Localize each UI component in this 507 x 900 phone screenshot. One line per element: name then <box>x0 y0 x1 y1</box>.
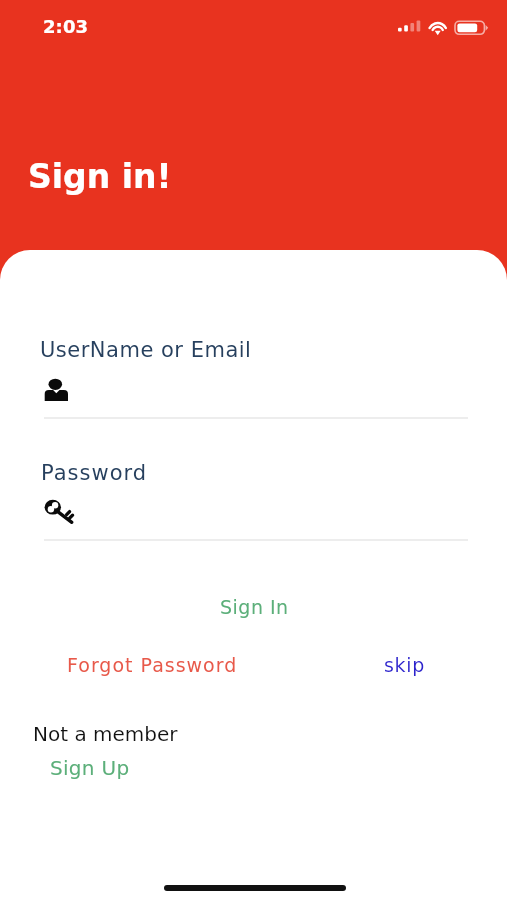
staticText: Sign Up <box>50 756 130 779</box>
button[interactable]: Sign In <box>206 590 303 624</box>
other: User <box>44 376 69 401</box>
staticText: skip <box>384 654 426 676</box>
button[interactable]: Forgot Password <box>53 648 252 682</box>
staticText: Forgot Password <box>67 654 238 676</box>
staticText: Sign in! <box>28 157 172 195</box>
staticText: 2:03 <box>43 16 89 37</box>
button[interactable]: Sign Up <box>44 752 136 783</box>
staticText: UserName or Email <box>40 338 252 362</box>
staticText: Not a member <box>33 722 178 745</box>
button[interactable]: skip <box>370 648 440 682</box>
staticText: Password <box>41 461 148 485</box>
other: Password <box>43 498 77 526</box>
staticText: Sign In <box>220 596 289 618</box>
